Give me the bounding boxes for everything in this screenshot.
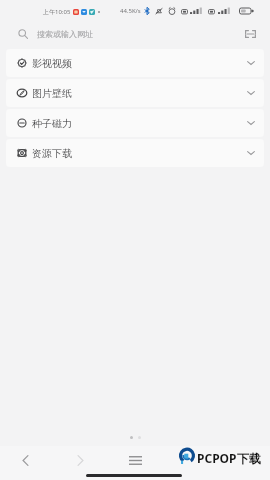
staticText: 资源下载 <box>32 147 72 160</box>
staticText: 下载 <box>237 451 261 466</box>
button[interactable]: Scan code <box>242 26 258 42</box>
button[interactable]: Menu <box>120 449 150 471</box>
staticText: 影视视频 <box>32 57 72 70</box>
button[interactable]: 资源下载 <box>6 139 264 167</box>
button[interactable]: Search <box>0 21 270 47</box>
button[interactable]: Forward <box>65 449 95 471</box>
staticText: PCPOP <box>197 450 237 466</box>
staticText: 图片壁纸 <box>32 87 72 100</box>
button[interactable]: 图片壁纸 <box>6 79 264 107</box>
staticText: 44.5K/s <box>120 7 141 15</box>
other: Search <box>18 29 28 39</box>
staticText: 搜索或输入网址 <box>37 29 93 39</box>
button[interactable]: Back <box>10 449 40 471</box>
staticText: 上午10:05 <box>43 8 71 16</box>
button[interactable]: 影视视频 <box>6 49 264 77</box>
staticText: 种子磁力 <box>32 117 72 130</box>
button[interactable]: 种子磁力 <box>6 109 264 137</box>
